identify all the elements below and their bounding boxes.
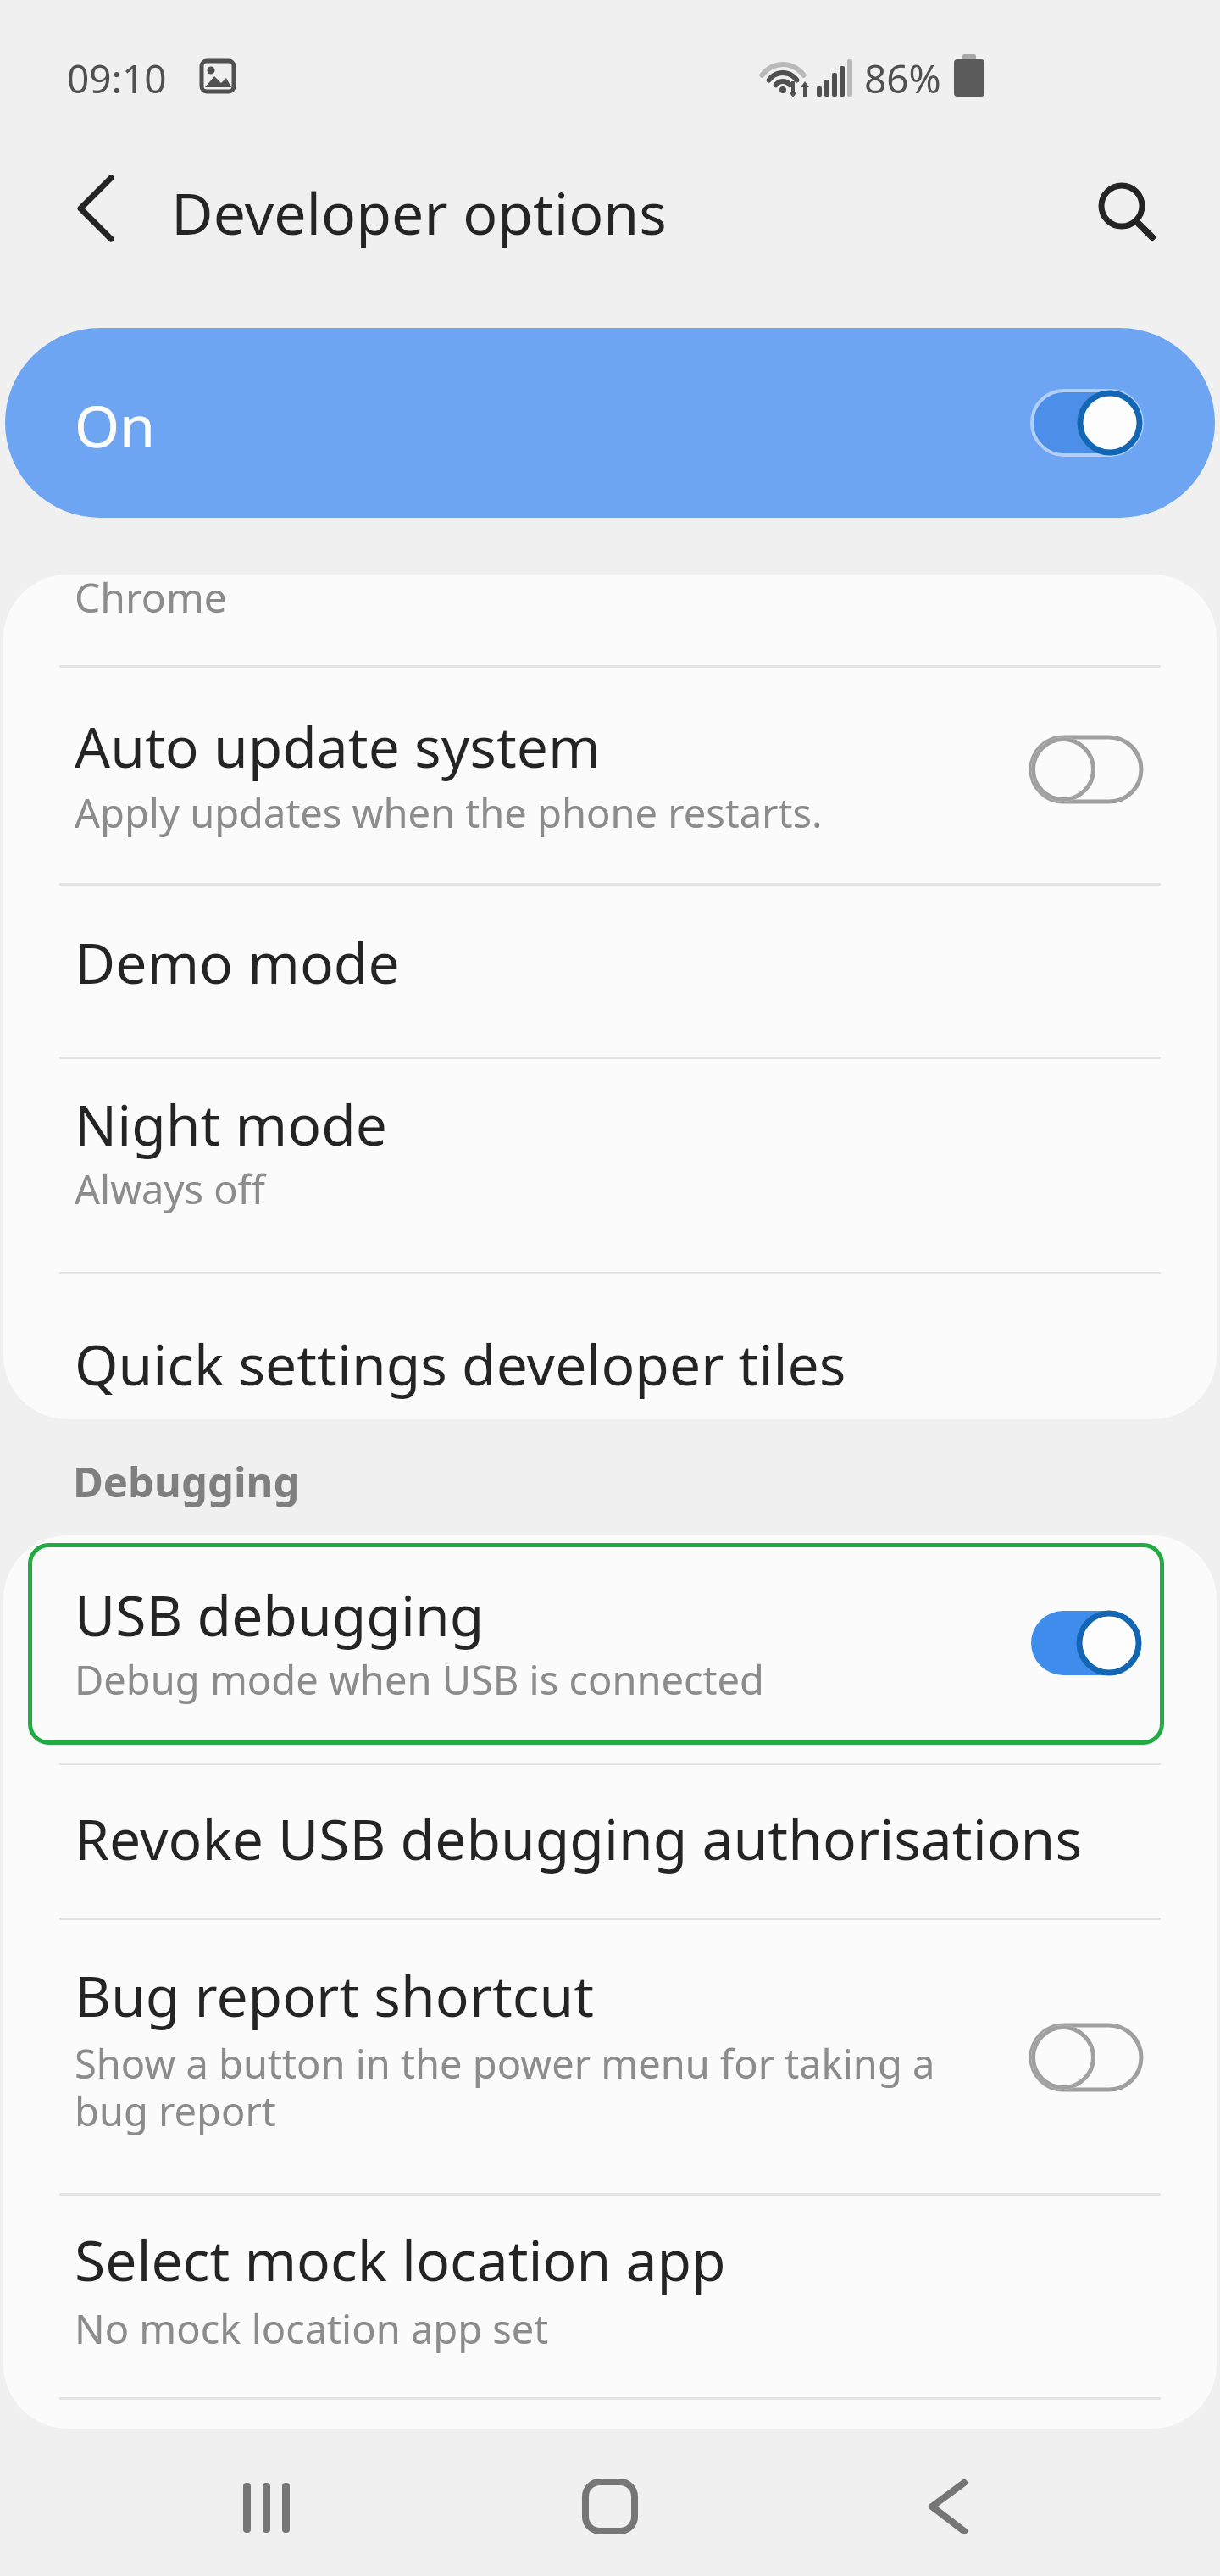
button[interactable] — [3, 885, 1217, 1055]
button[interactable] — [5, 328, 1215, 518]
button[interactable] — [898, 2456, 1000, 2557]
button[interactable] — [1027, 2022, 1145, 2093]
staticText: USB debugging — [75, 1576, 485, 1652]
staticText: Quick settings developer tiles — [75, 1325, 846, 1402]
button[interactable] — [3, 2195, 1217, 2396]
staticText: 09:10 — [67, 52, 167, 105]
staticText: Always off — [75, 1162, 265, 1216]
button[interactable] — [3, 1764, 1217, 1916]
button[interactable] — [216, 2456, 318, 2557]
button[interactable] — [3, 1919, 1217, 2191]
button[interactable] — [3, 1537, 1217, 1761]
staticText: Developer options — [171, 173, 667, 252]
button[interactable] — [1027, 1607, 1145, 1679]
staticText: Demo mode — [75, 924, 400, 1000]
button[interactable] — [3, 667, 1217, 881]
staticText: Show a button in the power menu for taki… — [75, 2036, 935, 2138]
staticText: 86% — [864, 52, 941, 105]
staticText: Night mode — [75, 1085, 388, 1162]
button[interactable] — [559, 2456, 661, 2557]
staticText: Auto update system — [75, 708, 601, 784]
button[interactable] — [56, 169, 134, 247]
staticText: Debug mode when USB is connected — [75, 1652, 764, 1707]
staticText: No mock location app set — [75, 2301, 549, 2356]
staticText: Revoke USB debugging authorisations — [75, 1800, 1082, 1876]
button[interactable] — [3, 1274, 1217, 1418]
button[interactable] — [1027, 734, 1145, 805]
staticText: Apply updates when the phone restarts. — [75, 786, 823, 840]
staticText: On — [75, 386, 156, 464]
button[interactable] — [1083, 166, 1167, 251]
staticText: Debugging — [73, 1453, 300, 1510]
staticText: Chrome — [75, 569, 227, 625]
staticText: Select mock location app — [75, 2221, 726, 2297]
button[interactable] — [3, 1058, 1217, 1270]
button[interactable] — [1028, 387, 1146, 458]
staticText: Bug report shortcut — [75, 1957, 595, 2033]
